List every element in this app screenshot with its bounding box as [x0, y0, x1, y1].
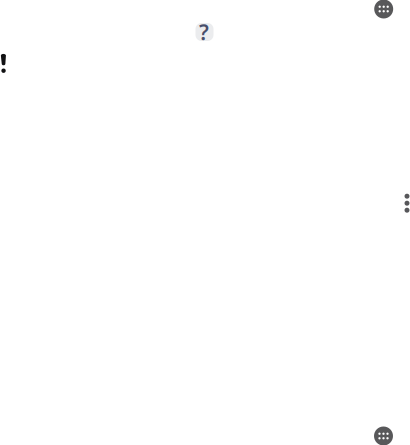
button[interactable]: More options [397, 192, 410, 214]
button[interactable]: Apps [374, 426, 393, 445]
button[interactable]: Apps [374, 0, 393, 18]
staticText: ? [199, 18, 209, 46]
button[interactable]: Help [195, 23, 213, 41]
